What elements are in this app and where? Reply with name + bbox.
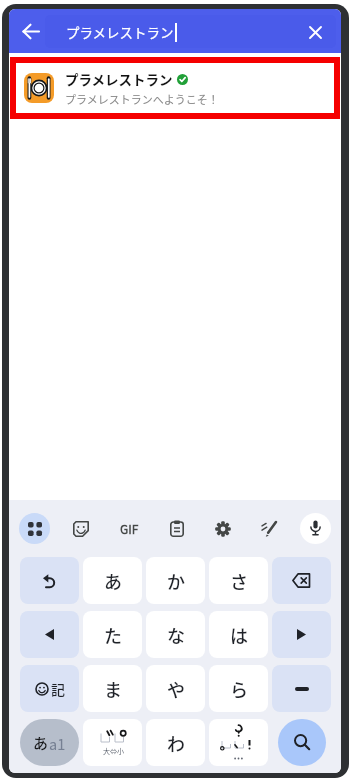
button[interactable] <box>20 557 79 604</box>
staticText: な <box>167 622 185 648</box>
button[interactable] <box>272 557 331 604</box>
button[interactable] <box>254 513 285 544</box>
staticText: た <box>104 622 122 648</box>
button[interactable] <box>209 719 268 766</box>
button[interactable] <box>207 513 238 544</box>
button[interactable]: は <box>209 611 268 658</box>
button[interactable] <box>21 21 41 41</box>
staticText: GIF <box>120 520 139 537</box>
button[interactable]: た <box>83 611 142 658</box>
staticText: ら <box>230 676 248 702</box>
staticText: わ <box>167 730 185 756</box>
staticText: あ <box>33 732 49 754</box>
button[interactable] <box>65 513 96 544</box>
staticText: さ <box>230 568 248 594</box>
button[interactable]: や <box>146 665 205 712</box>
button[interactable]: か <box>146 557 205 604</box>
button[interactable]: GIF <box>112 513 146 544</box>
button[interactable]: プラメレストラン <box>45 15 336 48</box>
staticText: や <box>167 676 185 702</box>
button[interactable] <box>272 719 331 766</box>
button[interactable]: ら <box>209 665 268 712</box>
staticText: 記 <box>51 679 65 699</box>
staticText: は <box>230 622 248 648</box>
button[interactable]: さ <box>209 557 268 604</box>
staticText: a1 <box>49 733 66 754</box>
button[interactable] <box>272 665 331 712</box>
button[interactable] <box>272 611 331 658</box>
staticText: プラメレストラン <box>65 69 173 89</box>
button[interactable] <box>300 513 331 544</box>
button[interactable]: 大⇔小 <box>83 719 142 766</box>
staticText: あ <box>104 568 122 594</box>
button[interactable] <box>19 513 50 544</box>
button[interactable]: プラメレストラン <box>10 57 340 119</box>
staticText: プラメレストラン <box>66 22 174 42</box>
button[interactable]: ま <box>83 665 142 712</box>
staticText: ま <box>104 676 122 702</box>
button[interactable] <box>304 21 326 43</box>
button[interactable]: わ <box>146 719 205 766</box>
button[interactable] <box>20 611 79 658</box>
button[interactable]: あ <box>83 557 142 604</box>
button[interactable] <box>161 513 192 544</box>
staticText: プラメレストランへようこそ！ <box>65 91 219 107</box>
button[interactable]: な <box>146 611 205 658</box>
button[interactable]: あ <box>20 719 79 766</box>
button[interactable]: 記 <box>20 665 79 712</box>
staticText: か <box>167 568 185 594</box>
staticText: 大⇔小 <box>103 746 124 756</box>
